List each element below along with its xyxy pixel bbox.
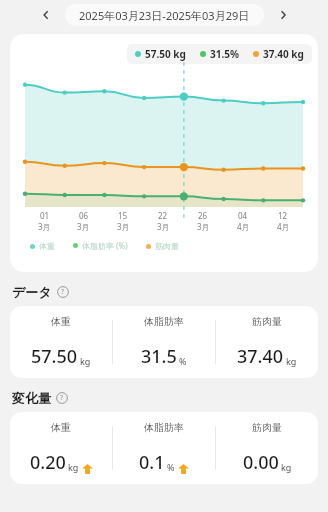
staticText: 3月 xyxy=(197,221,210,232)
staticText: 3月 xyxy=(157,221,170,232)
staticText: 12 xyxy=(278,210,288,221)
staticText: 体脂肪率 xyxy=(144,421,184,434)
staticText: kg xyxy=(281,461,292,473)
staticText: 15 xyxy=(118,210,128,221)
staticText: 31.5% xyxy=(210,47,239,61)
staticText: 22 xyxy=(158,210,168,221)
staticText: % xyxy=(167,461,175,473)
other: Help xyxy=(56,392,68,404)
button[interactable]: データ xyxy=(12,284,328,300)
staticText: kg xyxy=(286,355,297,367)
staticText: 0.20 xyxy=(30,450,66,475)
staticText: 06 xyxy=(79,210,89,221)
staticText: ? xyxy=(60,393,64,403)
staticText: 57.50 xyxy=(31,344,78,369)
button[interactable]: 変化量 xyxy=(12,390,328,406)
button[interactable]: Next week xyxy=(270,2,296,28)
staticText: 31.5 xyxy=(141,344,177,369)
staticText: 4月 xyxy=(237,221,250,232)
staticText: 3月 xyxy=(77,221,90,232)
staticText: 筋肉量 xyxy=(155,241,179,251)
staticText: 筋肉量 xyxy=(252,315,282,328)
staticText: 04 xyxy=(238,210,248,221)
staticText: 変化量 xyxy=(12,390,51,406)
staticText: 体重 xyxy=(51,315,71,328)
button[interactable]: 体重 xyxy=(10,306,318,378)
staticText: kg xyxy=(68,461,79,473)
staticText: 0.1 xyxy=(139,450,165,475)
staticText: データ xyxy=(12,284,52,300)
staticText: 体重 xyxy=(39,241,55,251)
staticText: 体脂肪率 (%) xyxy=(82,240,128,251)
button[interactable]: 体重 xyxy=(10,412,318,484)
staticText: 4月 xyxy=(277,221,290,232)
staticText: 01 xyxy=(40,210,50,221)
staticText: 37.40 kg xyxy=(263,47,304,61)
staticText: 37.40 xyxy=(237,344,284,369)
other: Help xyxy=(57,286,69,298)
staticText: 体重 xyxy=(51,421,71,434)
staticText: 3月 xyxy=(117,221,130,232)
staticText: 2025年03月23日-2025年03月29日 xyxy=(79,8,250,23)
button[interactable]: 57.50 kg xyxy=(10,34,318,272)
staticText: 筋肉量 xyxy=(252,421,282,434)
staticText: % xyxy=(179,355,187,367)
button[interactable]: Previous week xyxy=(33,2,59,28)
staticText: ? xyxy=(61,287,65,297)
staticText: 0.00 xyxy=(243,450,279,475)
staticText: 57.50 kg xyxy=(145,47,186,61)
button[interactable]: 2025年03月23日-2025年03月29日 xyxy=(65,4,264,26)
staticText: 26 xyxy=(198,210,208,221)
staticText: kg xyxy=(80,355,91,367)
staticText: 3月 xyxy=(38,221,51,232)
staticText: 体脂肪率 xyxy=(144,315,184,328)
